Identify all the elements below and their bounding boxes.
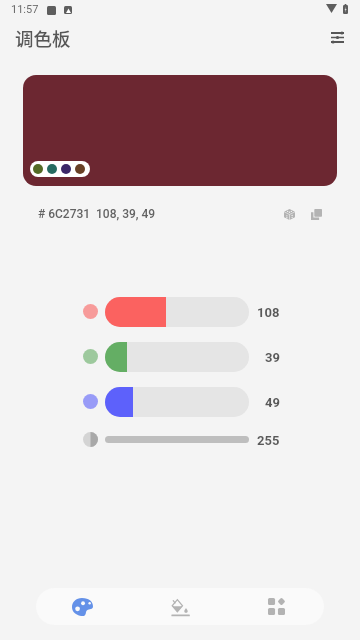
button[interactable]: [105, 436, 249, 443]
button[interactable]: [23, 75, 337, 186]
button[interactable]: [105, 297, 249, 327]
button[interactable]: [105, 387, 249, 417]
staticText: 49: [265, 395, 280, 410]
staticText: 108, 39, 49: [96, 207, 156, 221]
staticText: 108: [257, 305, 280, 320]
button[interactable]: Copy: [302, 200, 330, 228]
staticText: 39: [265, 350, 280, 365]
staticText: 11:57: [11, 3, 39, 16]
button[interactable]: Adjust: [321, 21, 354, 54]
button[interactable]: Palette: [36, 588, 132, 625]
button[interactable]: Random: [275, 200, 303, 228]
staticText: 255: [257, 433, 280, 448]
staticText: # 6C2731: [38, 207, 91, 221]
button[interactable]: Palettes grid: [228, 588, 324, 625]
staticText: 调色板: [15, 25, 71, 52]
button[interactable]: Fill color: [132, 588, 228, 625]
button[interactable]: [105, 342, 249, 372]
